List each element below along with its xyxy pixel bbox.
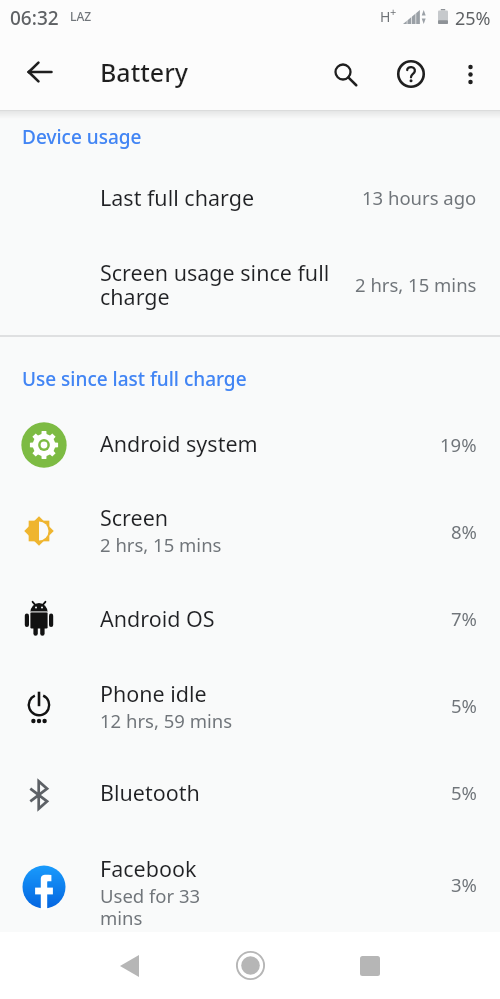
button[interactable]: Help	[387, 50, 435, 98]
staticText: Battery	[100, 55, 188, 89]
button[interactable]: Facebook	[0, 836, 500, 932]
button[interactable]: Android system	[0, 401, 500, 488]
staticText: Bluetooth	[100, 778, 200, 807]
staticText: 25%	[455, 6, 491, 31]
button[interactable]: More options	[446, 50, 494, 98]
button[interactable]: Screen	[0, 488, 500, 575]
staticText: 5%	[451, 780, 477, 805]
staticText: 8%	[451, 519, 477, 544]
button[interactable]: Search	[321, 50, 369, 98]
staticText: Use since last full charge	[22, 366, 247, 392]
button[interactable]: Home	[214, 932, 286, 999]
staticText: Device usage	[22, 124, 142, 150]
staticText: Used for 33 mins	[100, 883, 201, 931]
button[interactable]: Recent apps	[334, 932, 406, 999]
staticText: Phone idle	[100, 679, 207, 708]
button[interactable]: Android OS	[0, 575, 500, 662]
staticText: 2 hrs, 15 mins	[355, 272, 477, 297]
button[interactable]: Back	[93, 932, 165, 999]
button[interactable]: Phone idle	[0, 662, 500, 749]
staticText: 5%	[451, 693, 477, 718]
staticText: H	[380, 7, 391, 26]
staticText: LAZ	[70, 8, 92, 24]
staticText: 06:32	[10, 5, 59, 31]
staticText: Last full charge	[100, 183, 255, 212]
button[interactable]: Last full charge	[0, 160, 500, 235]
staticText: Screen	[100, 503, 169, 532]
button[interactable]: Navigate up	[12, 44, 68, 100]
staticText: 2 hrs, 15 mins	[100, 532, 222, 557]
staticText: 12 hrs, 59 mins	[100, 708, 233, 733]
staticText: 19%	[440, 432, 477, 457]
staticText: Screen usage since full charge	[100, 258, 340, 311]
staticText: Android system	[100, 429, 258, 458]
staticText: +	[390, 4, 397, 19]
staticText: Android OS	[100, 604, 215, 633]
button[interactable]: Bluetooth	[0, 749, 500, 836]
staticText: 3%	[451, 872, 477, 897]
staticText: Facebook	[100, 854, 197, 883]
staticText: 13 hours ago	[362, 185, 477, 210]
staticText: 7%	[451, 606, 477, 631]
button[interactable]: Screen usage since full charge	[0, 234, 500, 334]
